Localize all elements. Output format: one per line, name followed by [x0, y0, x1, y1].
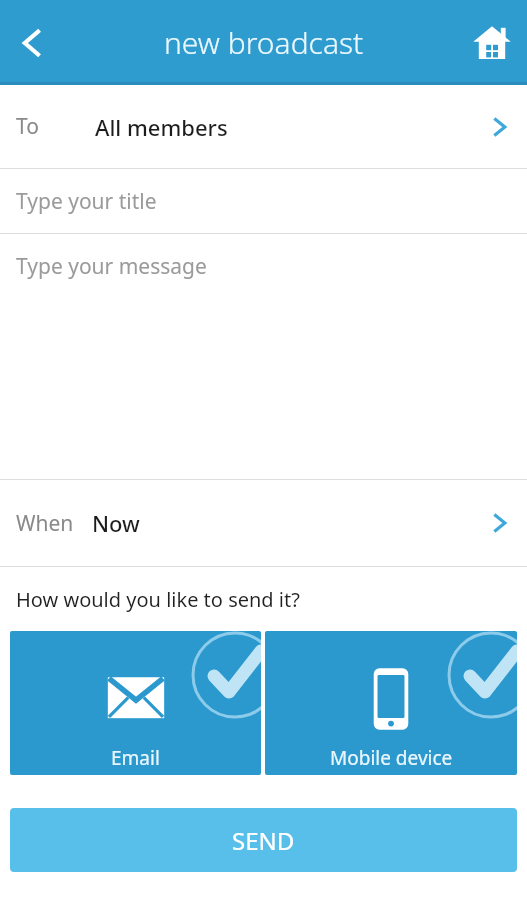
- staticText: All members: [95, 112, 228, 142]
- button[interactable]: Home: [457, 8, 527, 78]
- button[interactable]: To: [0, 85, 527, 168]
- staticText: Type your message: [16, 252, 207, 281]
- staticText: Email: [111, 745, 160, 771]
- staticText: When: [16, 509, 74, 538]
- staticText: Mobile device: [330, 745, 453, 771]
- button[interactable]: SEND: [10, 808, 517, 872]
- staticText: To: [16, 112, 39, 141]
- staticText: How would you like to send it?: [16, 586, 300, 613]
- staticText: SEND: [232, 824, 295, 857]
- button[interactable]: Type your title: [0, 169, 527, 233]
- button[interactable]: When: [0, 480, 527, 566]
- button[interactable]: Send to Mobile device: [265, 631, 517, 775]
- staticText: Now: [92, 508, 140, 538]
- staticText: new broadcast: [164, 22, 364, 63]
- button[interactable]: Send by Email: [10, 631, 261, 775]
- staticText: Type your title: [16, 187, 157, 216]
- button[interactable]: Type your message: [0, 234, 527, 479]
- button[interactable]: Back: [0, 11, 64, 75]
